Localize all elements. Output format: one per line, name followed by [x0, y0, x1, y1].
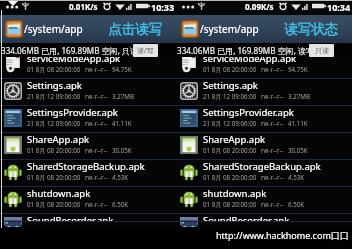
staticText: 4.53K	[112, 173, 129, 181]
staticText: 6.50K	[288, 200, 305, 208]
button[interactable]: Settings.apk	[0, 79, 176, 106]
staticText: Settings.apk	[27, 79, 82, 92]
staticText: 94.75K	[112, 65, 132, 73]
button[interactable]: ShareApp.apk	[0, 133, 176, 160]
staticText: /system/app	[200, 22, 259, 36]
staticText: 41.11K	[112, 119, 132, 127]
button[interactable]: serviceModeApp.apk	[176, 57, 352, 79]
staticText: rw-r--r--	[261, 119, 284, 127]
staticText: 21 8月 12 09:06:00	[203, 92, 257, 100]
staticText: SettingsProvider.apk	[27, 106, 118, 119]
button[interactable]: shutdown.apk	[176, 187, 352, 214]
staticText: rw-r--r--	[85, 200, 108, 208]
staticText: rw-r--r--	[261, 146, 284, 154]
staticText: 30.05K	[288, 146, 308, 154]
staticText: rw-r--r--	[85, 65, 108, 73]
staticText: rw-r--r--	[85, 92, 108, 100]
staticText: ShareApp.apk	[27, 133, 90, 146]
staticText: 01 8月 08 20:00:00	[27, 173, 81, 181]
staticText: 334.06MB 已用, 169.89MB 空闲, 读写	[177, 45, 315, 56]
staticText: 01 8月 08 20:00:00	[203, 173, 257, 181]
staticText: shutdown.apk	[203, 187, 267, 200]
staticText: SoundRecorder.apk	[27, 214, 114, 222]
button[interactable]: Settings.apk	[176, 79, 352, 106]
staticText: Settings.apk	[203, 79, 258, 92]
staticText: SoundRecorder.apk	[203, 214, 290, 222]
staticText: 10:33	[151, 1, 175, 11]
staticText: 94.75K	[288, 65, 308, 73]
button[interactable]: SettingsProvider.apk	[176, 106, 352, 133]
button[interactable]: shutdown.apk	[0, 187, 176, 214]
button[interactable]: ShareApp.apk	[176, 133, 352, 160]
button[interactable]: 读/写	[133, 44, 158, 57]
staticText: SettingsProvider.apk	[203, 106, 294, 119]
staticText: 41.11K	[288, 119, 308, 127]
staticText: SharedStorageBackup.apk	[203, 160, 321, 173]
staticText: /system/app	[24, 22, 83, 36]
staticText: serviceModeApp.apk	[27, 57, 121, 65]
button[interactable]: serviceModeApp.apk	[0, 57, 176, 79]
staticText: rw-r--r--	[261, 173, 284, 181]
staticText: serviceModeApp.apk	[203, 57, 297, 65]
staticText: 01 8月 08 20:00:00	[27, 65, 81, 73]
button[interactable]: SharedStorageBackup.apk	[176, 160, 352, 187]
staticText: 3.27MB	[288, 92, 310, 100]
staticText: SharedStorageBackup.apk	[27, 160, 145, 173]
staticText: rw-r--r--	[261, 92, 284, 100]
button[interactable]: SharedStorageBackup.apk	[0, 160, 176, 187]
staticText: shutdown.apk	[27, 187, 91, 200]
staticText: rw-r--r--	[261, 65, 284, 73]
staticText: rw-r--r--	[85, 119, 108, 127]
button[interactable]: SoundRecorder.apk	[176, 214, 352, 222]
staticText: rw-r--r--	[85, 146, 108, 154]
staticText: 21 8月 12 09:06:00	[27, 119, 81, 127]
staticText: 01 8月 08 20:00:00	[203, 65, 257, 73]
staticText: 4.53K	[288, 173, 305, 181]
staticText: rw-r--r--	[85, 173, 108, 181]
staticText: 30.05K	[112, 146, 132, 154]
staticText: 3.27MB	[112, 92, 134, 100]
staticText: 0.09K/s	[245, 1, 274, 11]
staticText: 21 8月 12 09:06:00	[27, 92, 81, 100]
staticText: 0.01K/s	[69, 1, 98, 11]
staticText: 读/写	[137, 46, 154, 56]
staticText: 01 8月 08 20:00:00	[203, 146, 257, 154]
staticText: 点击读写	[108, 21, 162, 38]
button[interactable]: SettingsProvider.apk	[0, 106, 176, 133]
staticText: 读写状态	[284, 21, 338, 38]
staticText: rw-r--r--	[261, 200, 284, 208]
staticText: 01 8月 08 20:00:00	[27, 146, 81, 154]
staticText: ShareApp.apk	[203, 133, 266, 146]
staticText: 21 8月 12 09:06:00	[203, 119, 257, 127]
staticText: 01 8月 08 20:00:00	[203, 200, 257, 208]
staticText: 6.50K	[112, 200, 129, 208]
staticText: 334.06MB 已用, 169.89MB 空闲, 只读	[1, 45, 139, 56]
staticText: 01 8月 08 20:00:00	[27, 200, 81, 208]
staticText: 10:34	[327, 1, 351, 11]
staticText: http://www.hackhome.com口口	[216, 229, 349, 241]
staticText: 只读	[315, 46, 329, 55]
button[interactable]: 只读	[309, 44, 334, 57]
button[interactable]: SoundRecorder.apk	[0, 214, 176, 222]
